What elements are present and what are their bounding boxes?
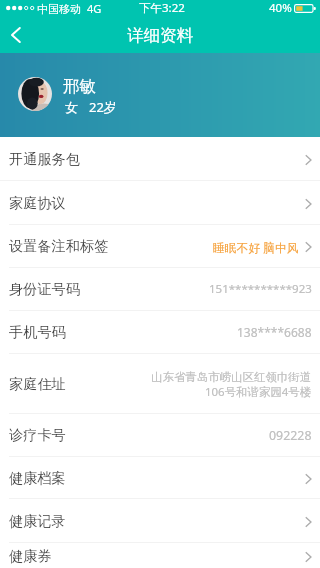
staticText: 4G	[87, 1, 102, 16]
staticText: 设置备注和标签	[9, 237, 109, 255]
staticText: 106号和谐家园4号楼	[205, 384, 312, 400]
staticText: 家庭协议	[9, 194, 66, 212]
staticText: 睡眠不好 脑中风	[213, 239, 299, 255]
staticText: 健康券	[9, 547, 52, 565]
button[interactable]: 健康档案	[0, 457, 320, 499]
staticText: 22岁	[89, 98, 117, 116]
staticText: 家庭住址	[9, 375, 66, 393]
staticText: 健康档案	[9, 469, 66, 487]
staticText: 40%	[269, 0, 292, 16]
button[interactable]: 设置备注和标签	[0, 225, 320, 268]
staticText: 手机号码	[9, 323, 66, 341]
button[interactable]: 健康记录	[0, 499, 320, 543]
button[interactable]: 邢敏	[0, 53, 320, 137]
staticText: 中国移动	[37, 2, 81, 16]
button[interactable]: 家庭住址	[0, 354, 320, 414]
staticText: 138****6688	[237, 324, 312, 340]
button[interactable]: 健康券	[0, 543, 320, 568]
staticText: 诊疗卡号	[9, 426, 66, 444]
staticText: 下午3:22	[139, 0, 185, 16]
button[interactable]: Back	[0, 20, 34, 53]
staticText: 151**********923	[209, 281, 312, 297]
button[interactable]: 身份证号码	[0, 268, 320, 311]
staticText: 092228	[269, 427, 312, 444]
button[interactable]: 开通服务包	[0, 137, 320, 181]
staticText: 山东省青岛市崂山区红领巾街道	[151, 370, 312, 384]
staticText: 女	[65, 99, 78, 115]
staticText: 详细资料	[127, 25, 193, 46]
button[interactable]: 手机号码	[0, 311, 320, 354]
button[interactable]: 诊疗卡号	[0, 414, 320, 457]
staticText: 邢敏	[63, 76, 96, 97]
button[interactable]: 家庭协议	[0, 181, 320, 225]
staticText: 身份证号码	[9, 280, 80, 298]
staticText: 开通服务包	[9, 150, 80, 168]
staticText: 健康记录	[9, 512, 66, 530]
